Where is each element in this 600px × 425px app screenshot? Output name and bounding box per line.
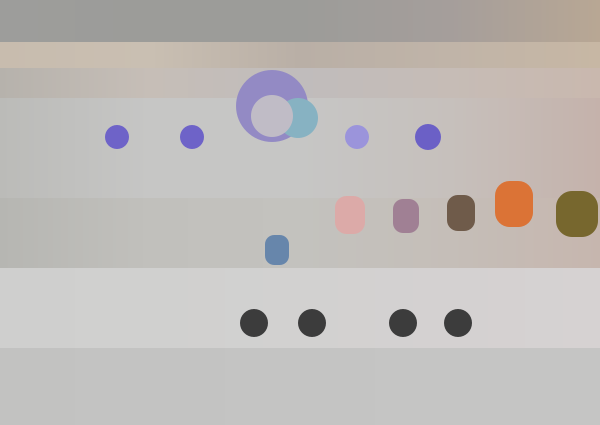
button[interactable]: Story one <box>105 125 129 149</box>
button[interactable]: Story four <box>345 125 369 149</box>
button[interactable]: Profile <box>444 309 472 337</box>
button[interactable]: Pink item <box>335 196 365 234</box>
button[interactable]: Search <box>298 309 326 337</box>
button[interactable]: Featured story <box>226 58 318 154</box>
button[interactable]: Favourites <box>389 309 417 337</box>
button[interactable]: Library <box>240 309 268 337</box>
button[interactable]: Dark item <box>447 195 475 231</box>
button[interactable]: Orange item <box>495 181 533 227</box>
button[interactable]: Violet item <box>393 199 419 233</box>
button[interactable]: Story five <box>415 124 441 150</box>
button[interactable]: Blue item <box>265 235 289 265</box>
button[interactable]: Olive item <box>556 191 598 237</box>
button[interactable]: Story two <box>180 125 204 149</box>
